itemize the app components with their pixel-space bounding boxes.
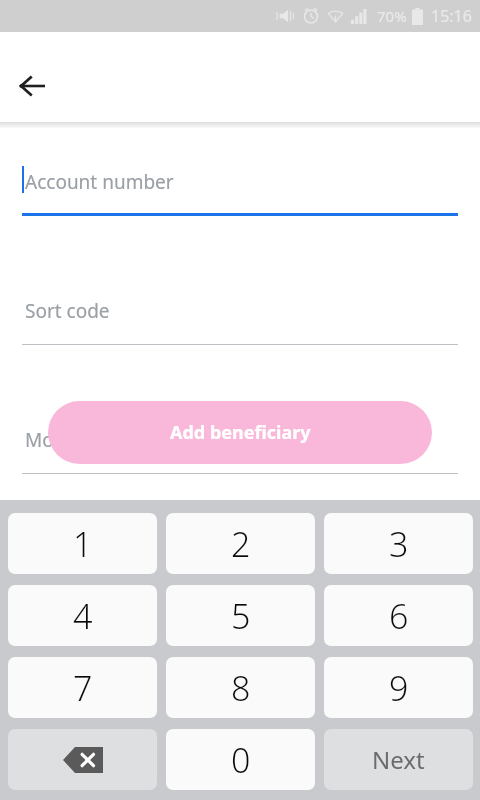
button[interactable]: 3	[324, 513, 473, 574]
staticText: 6	[389, 593, 409, 639]
staticText: 3	[389, 521, 409, 567]
button[interactable]: Account number	[22, 162, 458, 216]
button[interactable]: Next	[324, 729, 473, 790]
button[interactable]: 9	[324, 657, 473, 718]
staticText: 0	[231, 737, 251, 783]
button[interactable]: Sort code	[22, 291, 458, 345]
staticText: 70%	[377, 6, 407, 26]
staticText: 1	[73, 521, 93, 567]
staticText: Add beneficiary	[170, 420, 311, 445]
button[interactable]: 4	[8, 585, 157, 646]
staticText: 7	[73, 665, 93, 711]
button[interactable]: 2	[166, 513, 315, 574]
button[interactable]: 1	[8, 513, 157, 574]
staticText: 4	[73, 593, 93, 639]
staticText: Mobile number	[25, 427, 163, 453]
staticText: 5	[231, 593, 251, 639]
staticText: 8	[231, 665, 251, 711]
staticText: 2	[231, 521, 251, 567]
button[interactable]: Backspace	[8, 729, 157, 790]
staticText: 15:16	[431, 5, 472, 27]
button[interactable]: Mobile number	[22, 420, 458, 474]
button[interactable]: 0	[166, 729, 315, 790]
staticText: Account number	[25, 169, 174, 195]
button[interactable]: 7	[8, 657, 157, 718]
staticText: Next	[372, 743, 425, 776]
button[interactable]: 5	[166, 585, 315, 646]
staticText: 9	[389, 665, 409, 711]
button[interactable]: Back	[8, 62, 56, 110]
button[interactable]: Add beneficiary	[48, 401, 432, 464]
staticText: Sort code	[25, 298, 110, 324]
button[interactable]: 6	[324, 585, 473, 646]
button[interactable]: 8	[166, 657, 315, 718]
